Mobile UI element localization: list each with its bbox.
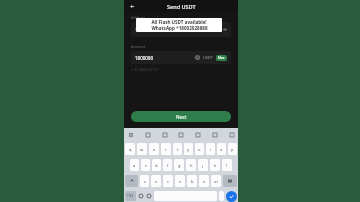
button[interactable]: k bbox=[210, 159, 220, 171]
staticText: WhatsApp +18002028888 bbox=[151, 25, 208, 31]
staticText: Next bbox=[176, 114, 187, 120]
button[interactable]: Se bbox=[131, 22, 231, 37]
staticText: w bbox=[140, 147, 144, 152]
button[interactable]: t bbox=[173, 143, 182, 155]
staticText: v bbox=[179, 179, 182, 184]
staticText: All Flash USDT available! bbox=[151, 19, 207, 25]
button[interactable]: Keyboard tool bbox=[127, 131, 134, 138]
button[interactable]: j bbox=[198, 159, 208, 171]
button[interactable]: Backspace bbox=[223, 175, 237, 187]
staticText: x bbox=[155, 179, 158, 184]
staticText: k bbox=[214, 163, 217, 168]
staticText: 1800000 bbox=[135, 55, 154, 61]
button[interactable]: r bbox=[161, 143, 171, 155]
staticText: Amount bbox=[131, 44, 146, 49]
button[interactable]: Settings bbox=[146, 193, 152, 199]
staticText: f bbox=[167, 163, 169, 168]
button[interactable]: l bbox=[222, 159, 232, 171]
staticText: h bbox=[190, 163, 193, 168]
button[interactable]: x bbox=[151, 175, 161, 187]
button[interactable]: Max bbox=[216, 55, 227, 61]
button[interactable]: d bbox=[152, 159, 161, 171]
button[interactable]: q bbox=[125, 143, 135, 155]
button[interactable]: h bbox=[186, 159, 196, 171]
button[interactable]: Keyboard tool bbox=[144, 131, 151, 138]
button[interactable]: Keyboard tool bbox=[211, 131, 218, 138]
button[interactable]: Back bbox=[128, 2, 137, 11]
button[interactable]: c bbox=[163, 175, 173, 187]
button[interactable]: i bbox=[206, 143, 215, 155]
staticText: ?123 bbox=[127, 194, 134, 198]
staticText: . bbox=[221, 194, 223, 199]
button[interactable]: Shift bbox=[125, 175, 138, 187]
staticText: USDT bbox=[203, 55, 213, 60]
button[interactable]: z bbox=[140, 175, 149, 187]
staticText: t bbox=[177, 147, 179, 152]
staticText: c bbox=[167, 179, 169, 184]
staticText: j bbox=[202, 163, 204, 168]
button[interactable]: g bbox=[174, 159, 184, 171]
staticText: a bbox=[133, 163, 136, 168]
button[interactable]: o bbox=[217, 143, 226, 155]
staticText: ≈ $1,800,187.19 bbox=[131, 67, 158, 72]
button[interactable]: Keyboard tool bbox=[228, 131, 235, 138]
button[interactable]: v bbox=[175, 175, 185, 187]
staticText: g bbox=[178, 163, 181, 168]
staticText: e bbox=[153, 147, 156, 152]
button[interactable]: u bbox=[195, 143, 204, 155]
staticText: u bbox=[198, 147, 201, 152]
button[interactable]: b bbox=[187, 175, 197, 187]
staticText: y bbox=[187, 147, 190, 152]
button[interactable]: Emoji bbox=[138, 193, 144, 199]
button[interactable]: Next bbox=[131, 111, 231, 122]
button[interactable]: Keyboard tool bbox=[194, 131, 201, 138]
button[interactable]: m bbox=[211, 175, 221, 187]
staticText: b bbox=[191, 179, 194, 184]
button[interactable]: y bbox=[184, 143, 193, 155]
button[interactable]: Keyboard tool bbox=[177, 131, 184, 138]
staticText: Max bbox=[218, 56, 225, 60]
button[interactable]: Keyboard tool bbox=[161, 131, 168, 138]
button[interactable]: n bbox=[199, 175, 209, 187]
button[interactable]: Enter bbox=[226, 191, 237, 202]
staticText: l bbox=[226, 163, 228, 168]
staticText: Address bbox=[131, 15, 146, 20]
staticText: s bbox=[145, 163, 147, 168]
staticText: z bbox=[144, 179, 146, 184]
button[interactable]: a bbox=[130, 159, 139, 171]
button[interactable]: w bbox=[137, 143, 147, 155]
staticText: i bbox=[210, 147, 212, 152]
button[interactable]: 1800000 bbox=[131, 51, 231, 64]
button[interactable]: . bbox=[219, 191, 224, 201]
button[interactable]: ?123 bbox=[125, 191, 136, 201]
staticText: d bbox=[155, 163, 158, 168]
button[interactable]: Clear bbox=[195, 55, 200, 60]
staticText: n bbox=[203, 179, 206, 184]
button[interactable]: s bbox=[141, 159, 150, 171]
button[interactable]: e bbox=[149, 143, 159, 155]
staticText: o bbox=[220, 147, 223, 152]
button[interactable]: p bbox=[228, 143, 237, 155]
staticText: q bbox=[129, 147, 132, 152]
staticText: m bbox=[214, 179, 218, 184]
button[interactable]: f bbox=[163, 159, 172, 171]
staticText: Send USDT bbox=[167, 3, 196, 10]
staticText: r bbox=[165, 147, 167, 152]
staticText: Se bbox=[135, 27, 140, 32]
staticText: p bbox=[231, 147, 234, 152]
